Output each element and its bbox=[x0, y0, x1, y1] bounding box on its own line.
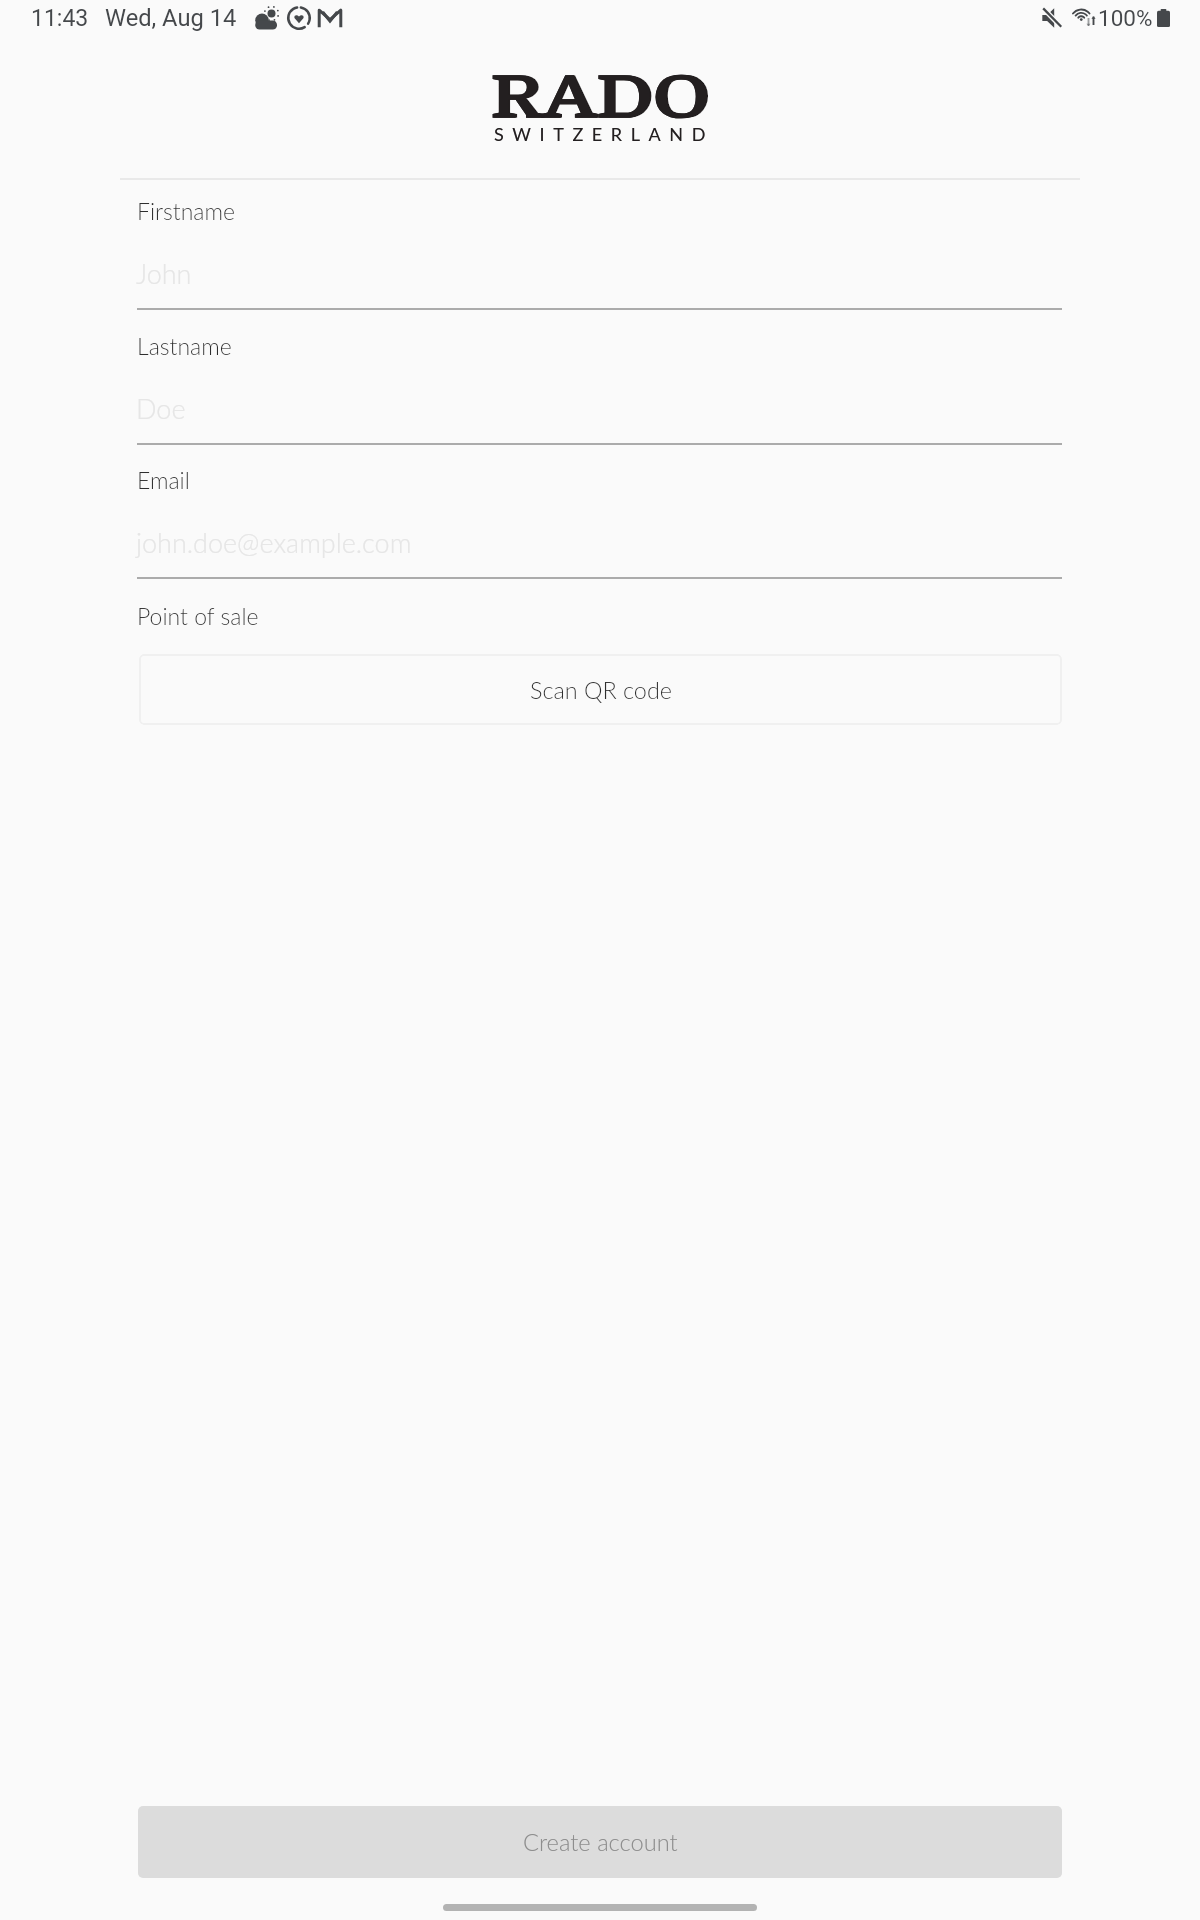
other: Fitness bbox=[287, 6, 311, 30]
other: Gmail bbox=[317, 5, 343, 31]
staticText: RADO bbox=[492, 67, 712, 130]
staticText: SWITZERLAND bbox=[494, 123, 714, 145]
staticText: Doe bbox=[136, 392, 186, 424]
staticText: Firstname bbox=[137, 197, 235, 225]
other: Wi-Fi bbox=[1072, 4, 1097, 29]
staticText: RADO bbox=[490, 67, 711, 130]
staticText: RADO bbox=[490, 67, 711, 130]
staticText: SWITZERLAND bbox=[494, 123, 714, 145]
staticText: 11:43 bbox=[31, 5, 89, 32]
staticText: Wed, Aug 14 bbox=[105, 4, 237, 32]
button[interactable]: Create account bbox=[138, 1806, 1062, 1878]
staticText: Scan QR code bbox=[530, 676, 672, 704]
button[interactable]: Firstname bbox=[137, 197, 1062, 310]
staticText: Create account bbox=[523, 1828, 678, 1856]
staticText: john.doe@example.com bbox=[136, 526, 412, 558]
button[interactable]: Lastname bbox=[137, 332, 1062, 445]
staticText: 100% bbox=[1098, 5, 1153, 31]
other: Silent mode bbox=[1041, 7, 1063, 29]
staticText: Lastname bbox=[137, 332, 232, 360]
button[interactable]: Email bbox=[137, 466, 1062, 579]
other: Battery full bbox=[1157, 9, 1170, 27]
staticText: RADO bbox=[490, 67, 711, 130]
other: Weather bbox=[254, 6, 279, 31]
staticText: Point of sale bbox=[137, 602, 259, 630]
staticText: Email bbox=[137, 466, 190, 494]
staticText: John bbox=[136, 257, 192, 289]
button[interactable]: Scan QR code bbox=[139, 654, 1062, 725]
